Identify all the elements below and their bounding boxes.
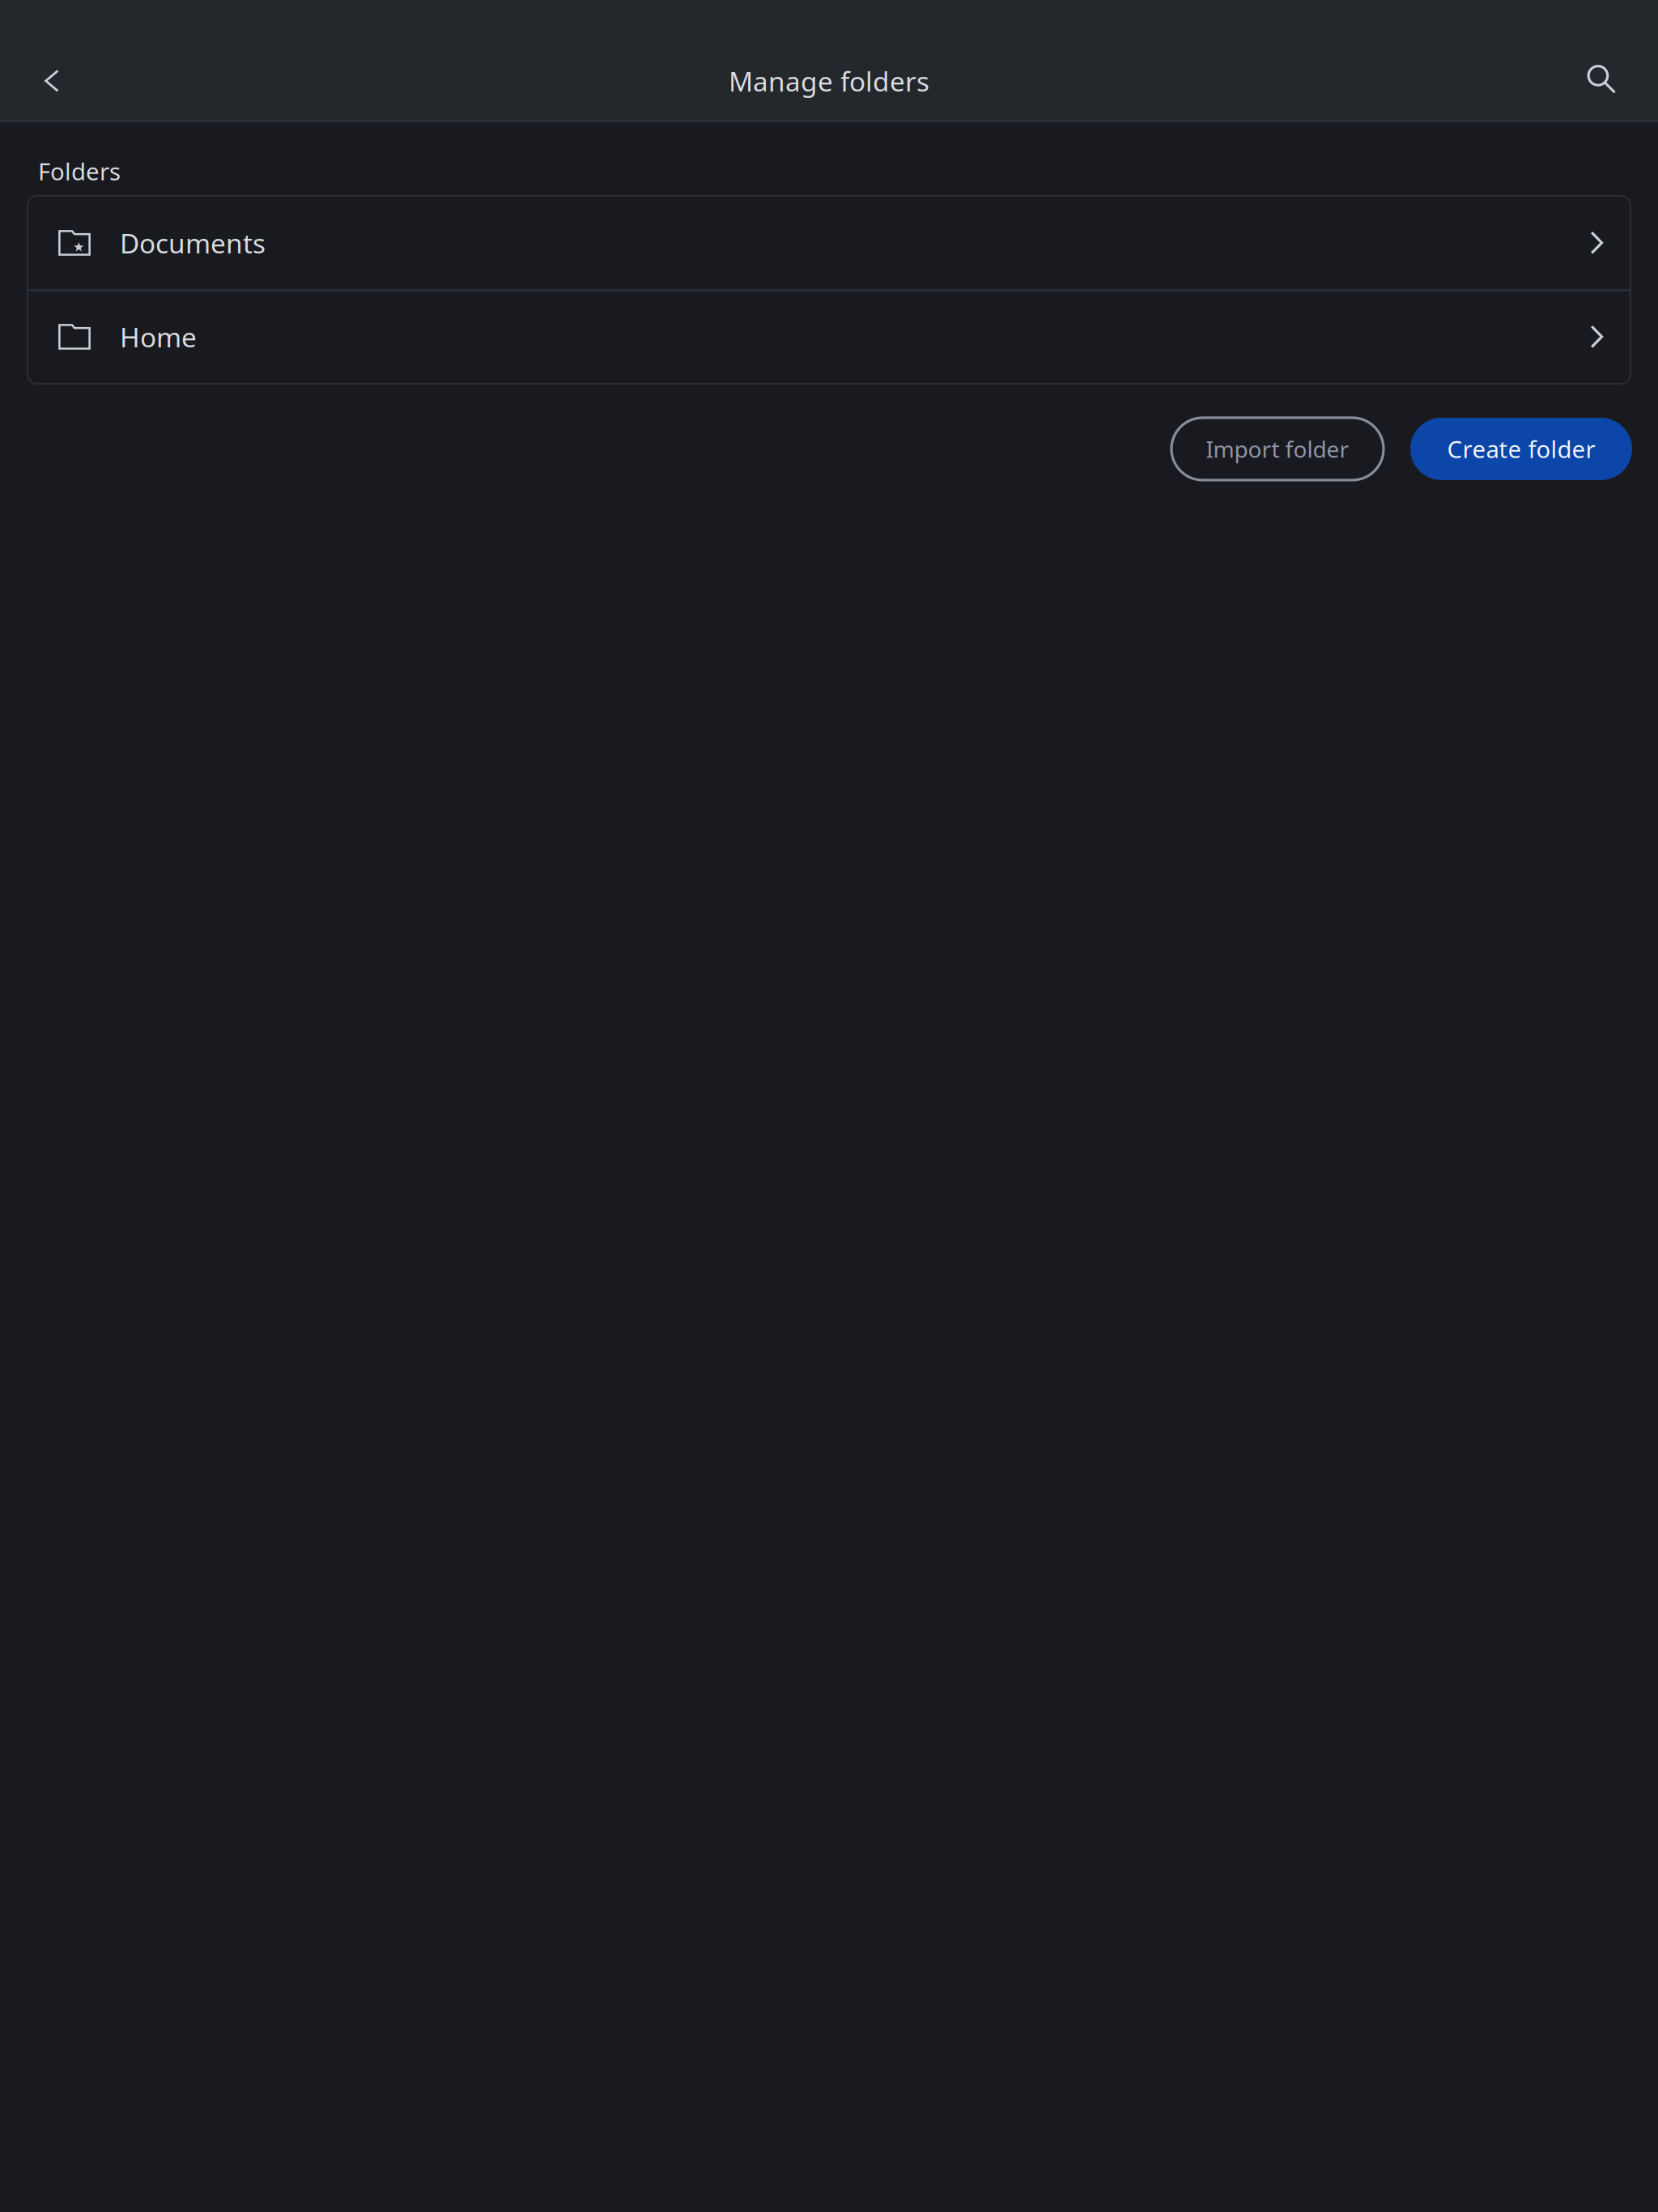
staticText: Import folder [1206,434,1349,464]
button[interactable]: Search [1571,50,1633,112]
button[interactable]: Back [21,50,83,112]
staticText: Documents [120,225,266,261]
button[interactable]: Home [28,290,1630,384]
staticText: Manage folders [729,63,929,99]
staticText: Create folder [1447,433,1595,465]
button[interactable]: Import folder [1171,418,1384,480]
staticText: Home [120,319,197,355]
button[interactable]: Create folder [1410,418,1632,480]
staticText: Folders [38,155,121,187]
button[interactable]: Documents [28,196,1630,290]
